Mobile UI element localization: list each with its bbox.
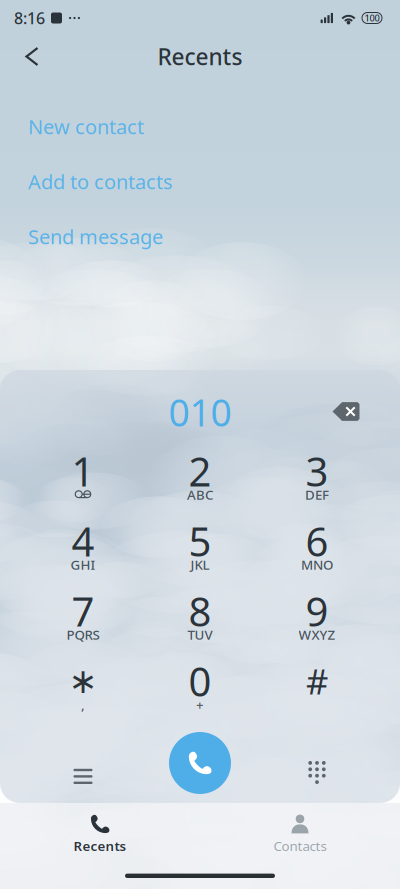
staticText: 5: [188, 514, 211, 567]
staticText: ,: [81, 696, 85, 713]
button[interactable]: #: [258, 646, 375, 716]
button[interactable]: 7: [24, 576, 141, 646]
staticText: 1: [71, 444, 94, 497]
staticText: JKL: [190, 556, 209, 573]
staticText: 9: [305, 584, 328, 637]
button[interactable]: 8: [141, 576, 258, 646]
button[interactable]: Send message: [0, 209, 400, 264]
staticText: 8:16: [14, 7, 45, 29]
button[interactable]: New contact: [0, 99, 400, 154]
staticText: 6: [305, 514, 328, 567]
staticText: 8: [188, 584, 211, 637]
staticText: Contacts: [273, 837, 326, 855]
staticText: DEF: [305, 486, 329, 503]
staticText: GHI: [70, 556, 95, 573]
button[interactable]: Add to contacts: [0, 154, 400, 209]
staticText: Recents: [157, 41, 242, 71]
staticText: 010: [168, 387, 231, 437]
staticText: 100: [364, 12, 379, 24]
button[interactable]: 4: [24, 506, 141, 576]
staticText: PQRS: [66, 626, 99, 643]
button[interactable]: 5: [141, 506, 258, 576]
staticText: +: [196, 696, 204, 713]
staticText: MNO: [301, 556, 333, 573]
staticText: 2: [188, 444, 211, 497]
button[interactable]: 6: [258, 506, 375, 576]
button[interactable]: Contacts: [200, 803, 400, 865]
button[interactable]: 9: [258, 576, 375, 646]
staticText: 0: [188, 654, 211, 707]
staticText: TUV: [187, 626, 212, 643]
staticText: Send message: [28, 223, 163, 250]
staticText: ∗: [68, 661, 97, 701]
button[interactable]: 0: [141, 646, 258, 716]
button[interactable]: 1: [24, 436, 141, 506]
staticText: WXYZ: [298, 626, 335, 643]
button[interactable]: 3: [258, 436, 375, 506]
button[interactable]: Call: [141, 716, 258, 794]
button[interactable]: Recents: [0, 803, 200, 865]
button[interactable]: Dialpad: [258, 716, 375, 784]
staticText: ABC: [187, 486, 213, 503]
staticText: Add to contacts: [28, 168, 173, 195]
button[interactable]: ∗: [24, 646, 141, 716]
staticText: #: [306, 658, 328, 704]
button[interactable]: Back: [9, 35, 55, 77]
button[interactable]: More options: [24, 716, 141, 784]
staticText: 7: [71, 584, 94, 637]
button[interactable]: 2: [141, 436, 258, 506]
staticText: 4: [71, 514, 94, 567]
staticText: New contact: [28, 113, 144, 140]
button[interactable]: Delete: [319, 389, 373, 433]
staticText: Recents: [73, 837, 126, 855]
staticText: 3: [305, 444, 328, 497]
